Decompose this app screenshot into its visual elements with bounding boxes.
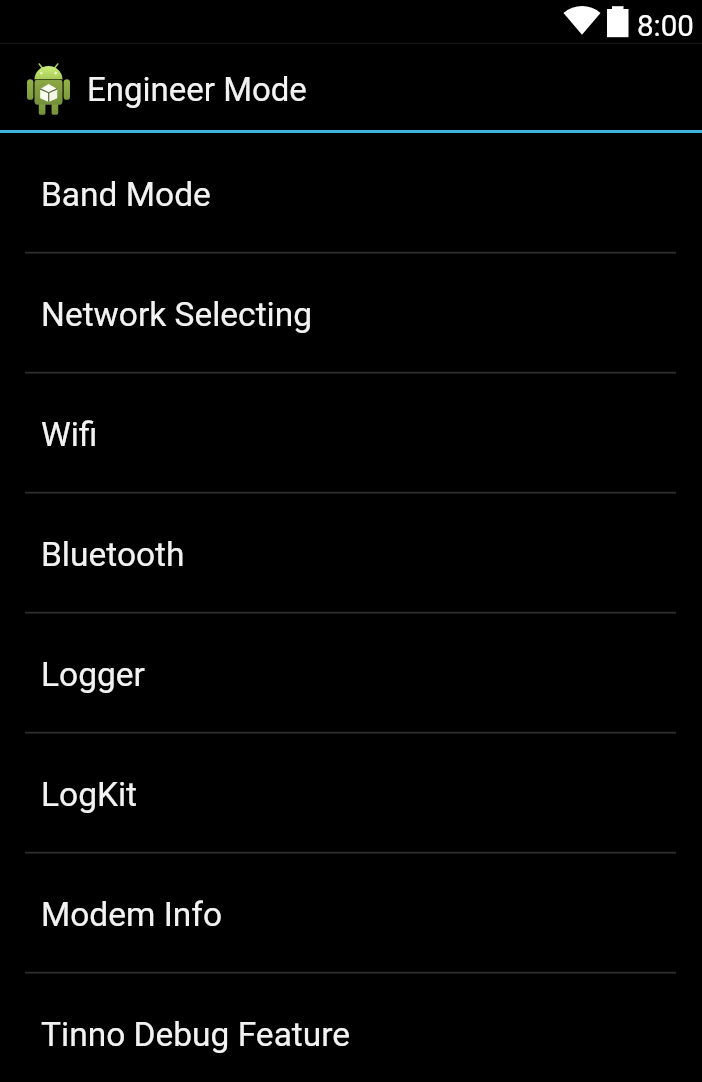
staticText: LogKit [41,775,138,814]
staticText: 8:00 [637,9,694,44]
staticText: Tinno Debug Feature [41,1015,351,1054]
staticText: Band Mode [41,175,211,214]
staticText: Wifi [41,415,98,454]
button[interactable]: Modem Info [0,853,702,973]
staticText: Logger [41,655,145,694]
other: Engineer Mode app icon [27,63,70,115]
button[interactable]: Band Mode [0,133,702,253]
staticText: Bluetooth [41,535,185,574]
staticText: Network Selecting [41,295,313,334]
button[interactable]: Tinno Debug Feature [0,973,702,1082]
staticText: Engineer Mode [87,70,307,109]
staticText: Modem Info [41,895,223,934]
button[interactable]: Wifi [0,373,702,493]
other: Status bar: wifi signal, battery, clock [0,0,702,44]
button[interactable]: LogKit [0,733,702,853]
button[interactable]: Engineer Mode app icon [0,44,702,130]
button[interactable]: Network Selecting [0,253,702,373]
button[interactable]: Logger [0,613,702,733]
button[interactable]: Bluetooth [0,493,702,613]
